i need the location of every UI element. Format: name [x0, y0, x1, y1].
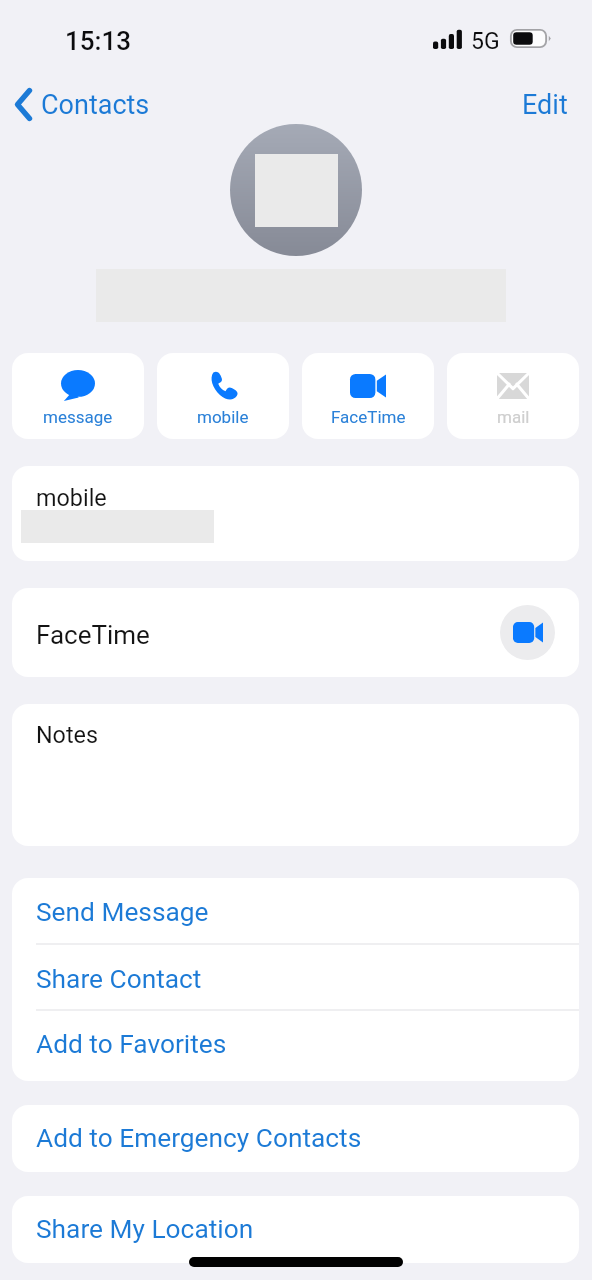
staticText: FaceTime — [36, 620, 150, 650]
staticText: Share My Location — [36, 1214, 254, 1245]
button[interactable]: FaceTime — [302, 353, 434, 439]
button[interactable]: Add to Emergency Contacts — [12, 1105, 579, 1172]
staticText: 15:13 — [65, 26, 132, 56]
staticText: 5G — [471, 28, 500, 55]
staticText: Add to Emergency Contacts — [36, 1123, 362, 1154]
button[interactable]: message — [12, 353, 144, 439]
staticText: mobile — [197, 407, 249, 427]
button[interactable]: Share My Location — [12, 1196, 579, 1263]
staticText: mobile — [36, 484, 107, 511]
staticText: Add to Favorites — [36, 1029, 227, 1060]
button[interactable]: Share Contact — [12, 945, 579, 1011]
button[interactable]: Edit — [508, 81, 592, 127]
staticText: Send Message — [36, 897, 209, 928]
button[interactable]: mobile — [12, 466, 579, 561]
button[interactable]: FaceTime — [12, 588, 579, 677]
staticText: Contacts — [41, 89, 150, 121]
button[interactable]: mail — [447, 353, 579, 439]
button[interactable]: Start FaceTime video call — [500, 605, 555, 660]
button[interactable]: Contacts — [10, 82, 156, 127]
staticText: FaceTime — [331, 407, 406, 427]
button[interactable]: Add to Favorites — [12, 1011, 579, 1081]
staticText: Share Contact — [36, 964, 202, 995]
button[interactable]: Notes — [12, 704, 579, 846]
staticText: mail — [497, 407, 530, 427]
button[interactable]: mobile — [157, 353, 289, 439]
button[interactable]: Send Message — [12, 878, 579, 945]
staticText: message — [43, 407, 113, 427]
staticText: Notes — [36, 721, 98, 748]
